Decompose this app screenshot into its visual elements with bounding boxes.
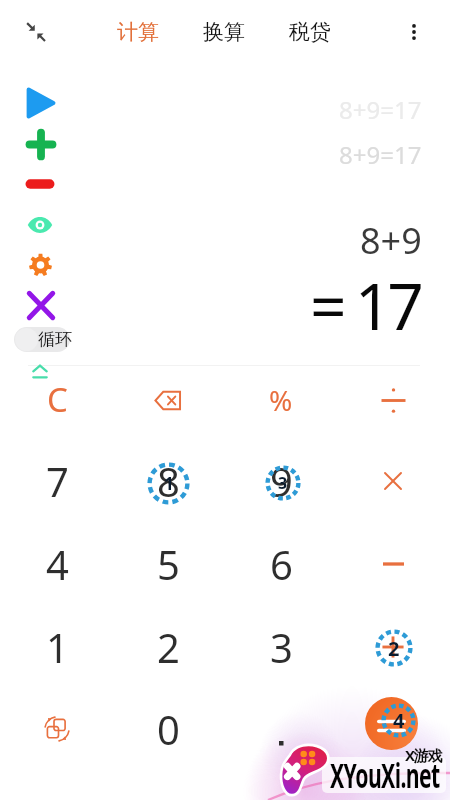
staticText: X游戏	[405, 745, 442, 765]
staticText: 8+9=17	[339, 93, 422, 126]
button[interactable]: Collapse window	[22, 18, 48, 44]
staticText: 2	[157, 620, 180, 674]
button[interactable]: 3	[226, 606, 336, 688]
staticText: 计算	[117, 19, 159, 45]
staticText: 8+9=17	[339, 138, 422, 171]
staticText: 4	[46, 537, 69, 591]
staticText: 5	[157, 537, 180, 591]
staticText: 换算	[203, 19, 245, 45]
staticText: C	[47, 377, 68, 422]
staticText: 1	[46, 620, 69, 674]
button[interactable]: 0	[113, 688, 223, 770]
button[interactable]: 9	[226, 440, 336, 522]
button[interactable]: Add	[27, 130, 55, 159]
staticText: 循环	[38, 329, 72, 350]
button[interactable]: Multiply	[338, 440, 448, 522]
button[interactable]: 1	[2, 606, 112, 688]
staticText: 3	[278, 472, 288, 494]
staticText: 7	[46, 454, 69, 508]
button[interactable]: Collapse toolbar	[32, 365, 48, 379]
staticText: 1	[164, 472, 174, 495]
staticText: 3	[270, 620, 293, 674]
staticText: 4	[393, 707, 405, 734]
button[interactable]: Unit conversion	[2, 688, 112, 770]
button[interactable]: Backspace	[113, 359, 223, 441]
staticText: 2	[388, 635, 400, 662]
button[interactable]: Decimal point	[226, 688, 336, 770]
button[interactable]: Record	[27, 88, 54, 118]
button[interactable]: 6	[226, 523, 336, 605]
staticText: 8+9	[360, 216, 422, 265]
button[interactable]: 计算	[109, 16, 167, 48]
button[interactable]: 税贷	[281, 16, 339, 48]
staticText: 6	[270, 537, 293, 591]
button[interactable]: Clear	[2, 359, 112, 441]
button[interactable]: 换算	[195, 16, 253, 48]
staticText: = 17	[310, 262, 420, 349]
button[interactable]: Preview	[27, 214, 53, 236]
staticText: %	[269, 381, 293, 419]
button[interactable]: 5	[113, 523, 223, 605]
staticText: XYouXi.net	[330, 752, 440, 798]
button[interactable]	[14, 327, 70, 352]
button[interactable]: Settings	[29, 253, 52, 277]
button[interactable]: 4	[2, 523, 112, 605]
button[interactable]: More options	[402, 20, 426, 44]
button[interactable]: Close	[27, 291, 55, 320]
button[interactable]: 7	[2, 440, 112, 522]
button[interactable]: Equals	[365, 697, 418, 750]
button[interactable]: Percent	[226, 359, 336, 441]
staticText: 0	[157, 702, 180, 756]
button[interactable]: Subtract	[338, 523, 448, 605]
button[interactable]: 8	[113, 440, 223, 522]
button[interactable]: Remove	[26, 178, 54, 190]
staticText: 税贷	[289, 19, 331, 45]
staticText: 8	[157, 454, 180, 508]
button[interactable]: Divide	[338, 359, 448, 441]
button[interactable]: 2	[113, 606, 223, 688]
button[interactable]: Add	[338, 606, 448, 688]
staticText: 9	[270, 454, 293, 508]
